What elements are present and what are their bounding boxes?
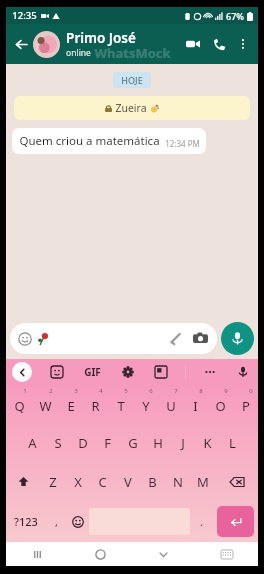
staticText: R xyxy=(91,397,100,415)
button[interactable]: Stickers xyxy=(48,363,66,381)
button[interactable]: V xyxy=(115,462,140,501)
button[interactable]: X xyxy=(65,462,90,501)
button[interactable]: D xyxy=(70,423,95,462)
button[interactable]: Shift xyxy=(6,462,40,501)
button[interactable]: B xyxy=(140,462,165,501)
button[interactable]: More xyxy=(201,363,219,381)
button[interactable]: H xyxy=(145,423,170,462)
button[interactable]: ?123 xyxy=(6,501,46,542)
button[interactable]: Clipboard xyxy=(152,363,170,381)
button[interactable]: Profile photo xyxy=(33,31,60,58)
button[interactable]: 1 xyxy=(6,385,32,423)
staticText: 12:34 PM xyxy=(165,138,200,149)
staticText: 8 xyxy=(199,387,203,395)
staticText: 12:35 xyxy=(12,9,37,22)
staticText: O xyxy=(215,397,226,415)
staticText: 3 xyxy=(74,387,78,395)
staticText: 9 xyxy=(224,387,228,395)
staticText: S xyxy=(54,434,62,452)
button[interactable]: , xyxy=(46,501,66,542)
staticText: C xyxy=(98,473,107,491)
button[interactable]: M xyxy=(190,462,215,501)
button[interactable]: 8 xyxy=(183,385,208,423)
button[interactable]: 6 xyxy=(133,385,158,423)
staticText: I xyxy=(193,397,198,415)
staticText: Y xyxy=(142,397,150,415)
staticText: Zueira xyxy=(115,101,147,115)
button[interactable]: Attach xyxy=(10,323,217,354)
button[interactable]: Keyboard layout xyxy=(195,542,258,566)
button[interactable]: Recents xyxy=(6,542,69,566)
button[interactable]: Video call xyxy=(180,31,206,57)
staticText: W xyxy=(39,397,52,415)
staticText: P xyxy=(242,397,250,415)
button[interactable]: Back xyxy=(12,362,32,382)
staticText: 2 xyxy=(49,387,53,395)
button[interactable]: 4 xyxy=(83,385,108,423)
staticText: , xyxy=(55,514,58,529)
staticText: X xyxy=(74,473,82,491)
staticText: M xyxy=(197,473,209,491)
staticText: L xyxy=(229,434,236,452)
button[interactable]: K xyxy=(195,423,220,462)
staticText: ?123 xyxy=(14,514,38,529)
staticText: HOJE xyxy=(121,74,143,86)
button[interactable]: F xyxy=(95,423,120,462)
button[interactable]: L xyxy=(220,423,245,462)
staticText: D xyxy=(78,434,88,452)
staticText: N xyxy=(173,473,183,491)
button[interactable]: Voice message xyxy=(221,322,254,355)
button[interactable]: 3 xyxy=(58,385,83,423)
staticText: 7 xyxy=(174,387,178,395)
staticText: V xyxy=(124,473,132,491)
button[interactable]: N xyxy=(165,462,190,501)
button[interactable]: Back xyxy=(10,33,32,55)
staticText: T xyxy=(117,397,125,415)
button[interactable]: . xyxy=(190,501,213,542)
button[interactable]: 0 xyxy=(233,385,258,423)
button[interactable]: Home xyxy=(69,542,132,566)
staticText: 1 xyxy=(23,387,27,395)
button[interactable]: Settings xyxy=(119,363,137,381)
button[interactable]: Hide keyboard xyxy=(132,542,195,566)
staticText: E xyxy=(67,397,75,415)
button[interactable]: Enter xyxy=(217,506,254,537)
button[interactable]: More options xyxy=(232,33,254,55)
button[interactable]: Quem criou a matemática xyxy=(12,128,206,154)
staticText: Primo José xyxy=(66,29,136,47)
staticText: 4 xyxy=(99,387,103,395)
staticText: 0 xyxy=(249,387,253,395)
button[interactable]: 7 xyxy=(158,385,183,423)
button[interactable]: Z xyxy=(40,462,65,501)
button[interactable]: 9 xyxy=(208,385,233,423)
button[interactable]: Voice input xyxy=(234,363,252,381)
staticText: U xyxy=(166,397,176,415)
button[interactable]: Call xyxy=(206,31,232,57)
staticText: H xyxy=(153,434,163,452)
button[interactable]: Backspace xyxy=(215,462,258,501)
staticText: WhatsMock xyxy=(94,44,171,62)
button[interactable]: G xyxy=(120,423,145,462)
staticText: Q xyxy=(14,397,25,415)
button[interactable]: 2 xyxy=(32,385,58,423)
staticText: 5 xyxy=(124,387,128,395)
staticText: B xyxy=(148,473,157,491)
button[interactable]: Attach xyxy=(167,330,184,347)
button[interactable]: Primo José xyxy=(66,29,180,59)
button[interactable]: GIF xyxy=(82,363,103,381)
staticText: A xyxy=(28,434,37,452)
button[interactable]: Camera xyxy=(192,330,209,347)
button[interactable]: Emoji xyxy=(66,501,89,542)
button[interactable]: J xyxy=(170,423,195,462)
button[interactable]: C xyxy=(90,462,115,501)
button[interactable]: A xyxy=(20,423,45,462)
staticText: Quem criou a matemática xyxy=(19,133,160,149)
button[interactable]: S xyxy=(45,423,70,462)
staticText: 6 xyxy=(149,387,153,395)
button[interactable]: 5 xyxy=(108,385,133,423)
staticText: online xyxy=(66,47,91,59)
staticText: GIF xyxy=(84,365,101,379)
staticText: J xyxy=(181,434,185,452)
staticText: 67% xyxy=(226,10,244,22)
